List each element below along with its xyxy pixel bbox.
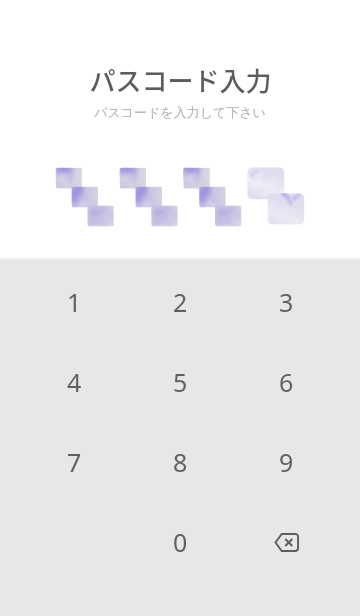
staticText: 8 <box>173 445 188 479</box>
staticText: 3 <box>279 285 294 319</box>
staticText: 6 <box>279 365 294 399</box>
staticText: 1 <box>67 285 82 319</box>
staticText: 9 <box>279 445 294 479</box>
staticText: 5 <box>173 365 188 399</box>
staticText: 2 <box>173 285 188 319</box>
other: Delete <box>274 533 299 552</box>
button[interactable]: 8 <box>127 422 233 502</box>
button[interactable]: 2 <box>127 262 233 342</box>
button[interactable]: 1 <box>21 262 127 342</box>
staticText: 0 <box>173 525 188 559</box>
button[interactable]: 6 <box>233 342 339 422</box>
button[interactable]: 3 <box>233 262 339 342</box>
button[interactable]: 0 <box>127 502 233 582</box>
button[interactable]: 7 <box>21 422 127 502</box>
staticText: パスコードを入力して下さい <box>94 104 266 120</box>
button[interactable]: 4 <box>21 342 127 422</box>
button[interactable]: Delete <box>233 502 339 582</box>
button[interactable]: 5 <box>127 342 233 422</box>
staticText: パスコード入力 <box>89 61 272 99</box>
staticText: 4 <box>67 365 82 399</box>
staticText: 7 <box>67 445 82 479</box>
button[interactable]: 9 <box>233 422 339 502</box>
